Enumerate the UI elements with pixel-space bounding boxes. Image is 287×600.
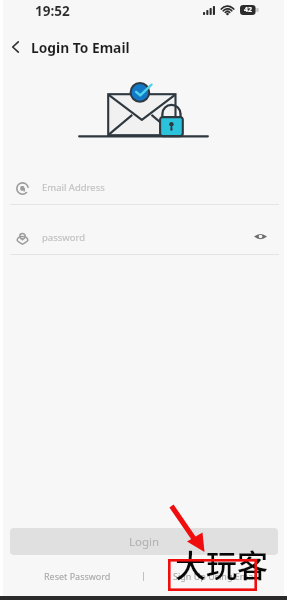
- staticText: Sign Up Using Email: [173, 570, 258, 582]
- button[interactable]: Reset Password: [38, 566, 117, 586]
- button[interactable]: Login: [10, 528, 278, 555]
- staticText: Login To Email: [31, 38, 130, 57]
- button[interactable]: Email Address: [0, 176, 287, 206]
- button[interactable]: Show password: [250, 226, 271, 247]
- staticText: 42: [244, 5, 253, 15]
- staticText: Email Address: [42, 181, 105, 194]
- button[interactable]: password: [0, 226, 287, 256]
- staticText: 大玩客: [175, 541, 268, 586]
- staticText: Login: [129, 534, 160, 550]
- button[interactable]: Back: [3, 35, 27, 59]
- button[interactable]: Sign Up Using Email: [167, 566, 264, 586]
- staticText: 19:52: [35, 2, 70, 20]
- staticText: password: [42, 231, 86, 244]
- staticText: Reset Password: [44, 570, 111, 582]
